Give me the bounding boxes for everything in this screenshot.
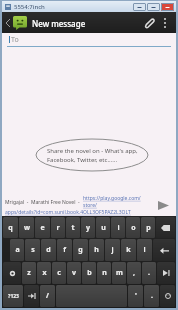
button[interactable]: Maximize: [147, 3, 160, 11]
button[interactable]: To: [2, 33, 176, 47]
staticText: l: [143, 245, 146, 255]
button[interactable]: d: [41, 239, 56, 261]
staticText: x: [42, 268, 47, 278]
staticText: m: [116, 268, 123, 278]
button[interactable]: Emoji: [160, 285, 175, 307]
button[interactable]: Send: [153, 195, 173, 215]
staticText: a: [15, 245, 20, 255]
button[interactable]: v: [67, 262, 81, 284]
button[interactable]: o: [126, 217, 140, 238]
staticText: c: [57, 268, 61, 278]
staticText: New message: [32, 18, 86, 29]
other: Up: [6, 19, 10, 27]
staticText: ': [135, 291, 137, 301]
staticText: e: [40, 223, 45, 233]
button[interactable]: f: [57, 239, 72, 261]
staticText: 5554:7inch: [14, 3, 45, 11]
staticText: i: [117, 223, 120, 233]
staticText: y: [86, 223, 90, 233]
staticText: h: [94, 245, 99, 255]
button[interactable]: c: [52, 262, 66, 284]
button[interactable]: Minimize: [133, 3, 146, 11]
staticText: ,: [133, 268, 135, 278]
staticText: r: [56, 223, 60, 233]
button[interactable]: .: [142, 262, 156, 284]
button[interactable]: b: [82, 262, 96, 284]
button[interactable]: n: [97, 262, 111, 284]
staticText: /: [46, 291, 49, 301]
button[interactable]: u: [96, 217, 110, 238]
button[interactable]: Close: [161, 3, 174, 11]
button[interactable]: w: [19, 217, 34, 238]
staticText: g: [78, 245, 83, 255]
staticText: o: [131, 223, 136, 233]
button[interactable]: j: [105, 239, 120, 261]
staticText: b: [87, 268, 92, 278]
button[interactable]: Next: [157, 262, 175, 284]
staticText: t: [71, 223, 75, 233]
staticText: w: [24, 223, 30, 233]
staticText: f: [63, 245, 66, 255]
button[interactable]: g: [73, 239, 88, 261]
button[interactable]: q: [3, 217, 18, 238]
staticText: Mrigajal - Marathi Free Novel -: [5, 199, 83, 206]
button[interactable]: x: [37, 262, 51, 284]
button[interactable]: Enter: [153, 239, 175, 261]
staticText: Share the novel on - What's app,: [47, 147, 138, 155]
button[interactable]: More options: [158, 16, 172, 30]
staticText: ?123: [8, 293, 19, 300]
button[interactable]: y: [81, 217, 95, 238]
button[interactable]: [56, 285, 127, 307]
staticText: apps/details?id=com.sunil.book.4OLL3OF5P…: [5, 209, 131, 216]
button[interactable]: Mrigajal - Marathi Free Novel -: [5, 195, 150, 216]
button[interactable]: s: [25, 239, 40, 261]
button[interactable]: Up: [6, 16, 90, 30]
staticText: n: [102, 268, 107, 278]
button[interactable]: m: [112, 262, 126, 284]
button[interactable]: l: [137, 239, 152, 261]
staticText: Facebook, Twitter, etc......: [47, 156, 118, 164]
staticText: z: [27, 268, 31, 278]
button[interactable]: Shift: [3, 262, 21, 284]
staticText: q: [8, 223, 13, 233]
staticText: v: [72, 268, 76, 278]
button[interactable]: h: [89, 239, 104, 261]
staticText: .: [151, 291, 153, 301]
button[interactable]: a: [10, 239, 24, 261]
staticText: https://play.google.com/store/: [83, 195, 150, 209]
staticText: u: [101, 223, 106, 233]
button[interactable]: .: [144, 285, 159, 307]
button[interactable]: Tab: [24, 285, 39, 307]
staticText: To: [11, 35, 19, 45]
button[interactable]: /: [40, 285, 55, 307]
staticText: j: [111, 245, 114, 255]
staticText: .: [148, 268, 150, 278]
staticText: p: [146, 223, 151, 233]
staticText: d: [46, 245, 51, 255]
button[interactable]: i: [111, 217, 125, 238]
staticText: s: [31, 245, 35, 255]
button[interactable]: r: [51, 217, 65, 238]
button[interactable]: ?123: [3, 285, 23, 307]
button[interactable]: k: [121, 239, 136, 261]
button[interactable]: Attach: [140, 14, 158, 32]
button[interactable]: e: [35, 217, 50, 238]
button[interactable]: z: [22, 262, 36, 284]
button[interactable]: p: [141, 217, 155, 238]
staticText: k: [126, 245, 131, 255]
button[interactable]: Delete: [156, 217, 175, 238]
button[interactable]: t: [66, 217, 80, 238]
button[interactable]: ,: [127, 262, 141, 284]
button[interactable]: ': [128, 285, 143, 307]
